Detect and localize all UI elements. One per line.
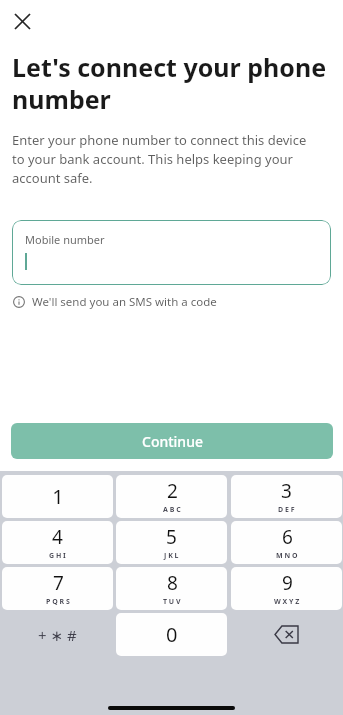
staticText: Mobile number [25, 232, 105, 247]
staticText: Enter your phone number to connect this … [12, 131, 321, 187]
staticText: W X Y Z [274, 597, 300, 607]
button[interactable]: 2 [116, 475, 227, 518]
staticText: 9 [282, 570, 293, 596]
button[interactable]: 4 [2, 521, 113, 564]
staticText: 8 [167, 570, 178, 596]
staticText: + ∗ # [38, 625, 77, 645]
staticText: 6 [282, 524, 293, 550]
button[interactable]: Mobile number [12, 220, 331, 285]
button[interactable]: 1 [2, 475, 113, 518]
staticText: D E F [278, 505, 295, 515]
button[interactable]: Symbols [2, 613, 113, 656]
button[interactable]: 0 [116, 613, 227, 656]
staticText: J K L [164, 551, 179, 561]
staticText: T U V [163, 597, 181, 607]
button[interactable]: 7 [2, 567, 113, 610]
button[interactable]: 6 [231, 521, 342, 564]
staticText: 3 [281, 478, 292, 504]
staticText: A B C [163, 505, 181, 515]
button[interactable]: 8 [116, 567, 227, 610]
staticText: M N O [276, 551, 298, 561]
staticText: 4 [52, 524, 63, 550]
staticText: P Q R S [46, 597, 70, 607]
staticText: We'll send you an SMS with a code [32, 294, 217, 310]
staticText: 0 [166, 621, 178, 648]
button[interactable]: 9 [231, 567, 342, 610]
staticText: 1 [52, 483, 64, 510]
button[interactable]: Continue [11, 423, 333, 459]
button[interactable]: Close [4, 3, 40, 39]
button[interactable]: 5 [116, 521, 227, 564]
staticText: Let's connect your phone number [12, 50, 335, 116]
button[interactable]: 3 [231, 475, 342, 518]
staticText: G H I [49, 551, 66, 561]
staticText: 5 [166, 524, 177, 550]
staticText: Continue [142, 432, 203, 451]
staticText: 2 [167, 478, 178, 504]
staticText: 7 [53, 570, 64, 596]
button[interactable]: Backspace [231, 613, 342, 656]
